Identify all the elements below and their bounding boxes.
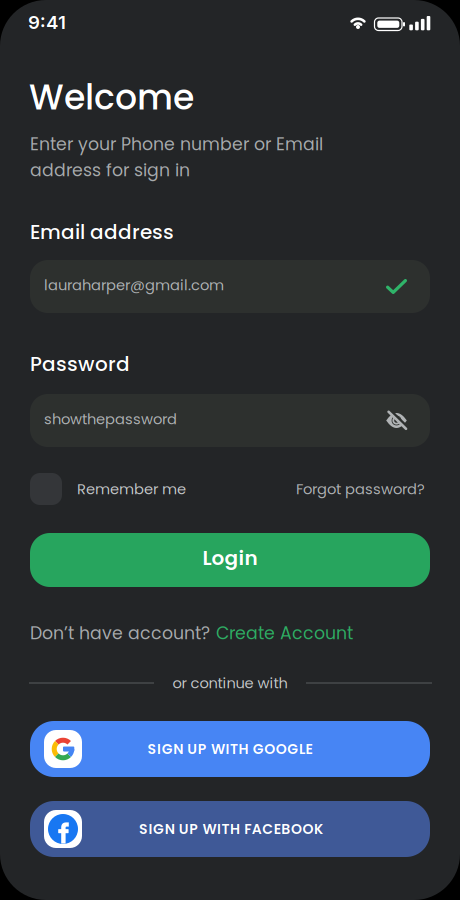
button[interactable]: Remember me [30,473,186,505]
staticText: showthepassword [44,409,177,429]
staticText: or continue with [172,673,287,693]
button[interactable]: SIGN UP WITH FACEBOOK [30,801,430,857]
button[interactable]: Create Account [216,621,353,645]
staticText: Forgot password? [296,479,425,499]
button[interactable]: Show password [386,411,407,430]
button[interactable]: lauraharper@gmail.com [30,260,430,313]
staticText: Password [30,350,130,378]
staticText: Create Account [216,621,353,645]
button[interactable]: Forgot password? [296,479,425,499]
staticText: 9:41 [28,11,66,34]
staticText: Welcome [29,73,194,121]
staticText: SIGN UP WITH FACEBOOK [139,819,323,839]
staticText: Remember me [77,479,186,499]
staticText: Login [202,544,257,572]
staticText: lauraharper@gmail.com [44,275,224,295]
staticText: SIGN UP WITH GOOGLE [148,739,312,759]
staticText: Don’t have account? [30,621,210,645]
button[interactable]: SIGN UP WITH GOOGLE [30,721,430,777]
button[interactable]: Login [30,533,430,587]
button[interactable]: showthepassword [30,394,430,447]
staticText: Email address [30,218,174,246]
staticText: Enter your Phone number or Email address… [30,132,323,182]
